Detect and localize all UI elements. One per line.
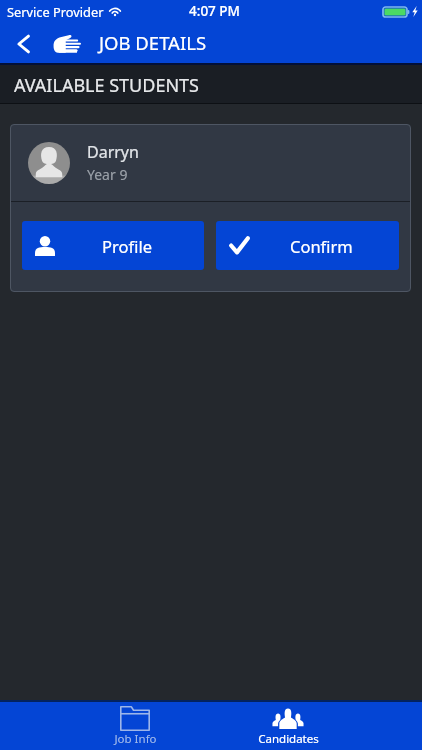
staticText: Year 9 xyxy=(87,165,128,184)
button[interactable]: Confirm xyxy=(216,221,399,270)
button[interactable]: Back xyxy=(0,22,44,65)
staticText: AVAILABLE STUDENTS xyxy=(14,73,199,98)
staticText: Darryn xyxy=(87,141,139,163)
staticText: Confirm xyxy=(290,235,353,257)
button[interactable]: Candidates xyxy=(248,700,328,750)
button[interactable]: Job Info xyxy=(95,700,175,750)
staticText: Profile xyxy=(102,235,152,257)
staticText: Candidates xyxy=(258,731,319,747)
staticText: 4:07 PM xyxy=(189,2,240,20)
button[interactable]: Profile xyxy=(22,221,204,270)
staticText: Job Info xyxy=(114,731,157,747)
staticText: Service Provider xyxy=(7,3,104,20)
staticText: JOB DETAILS xyxy=(99,30,207,55)
button[interactable]: Darryn xyxy=(10,124,411,201)
